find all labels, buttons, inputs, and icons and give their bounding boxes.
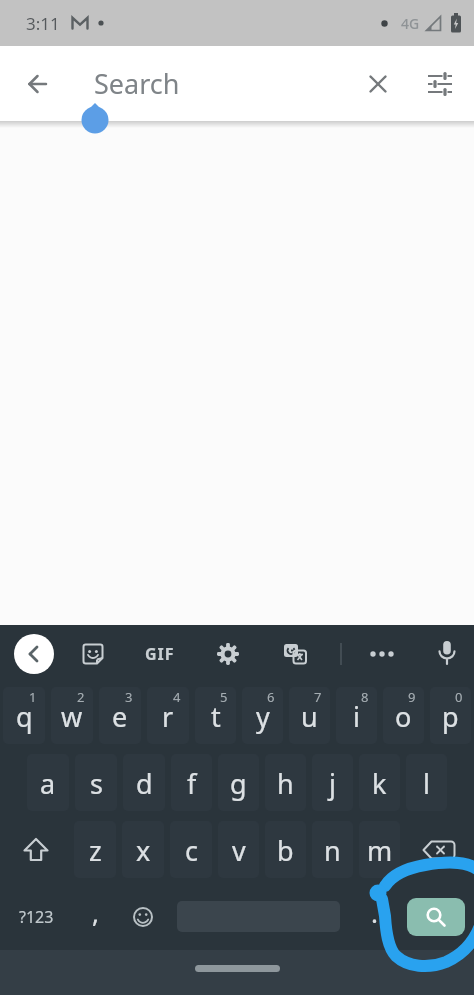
- button[interactable]: h: [262, 749, 309, 816]
- button[interactable]: r: [144, 682, 192, 749]
- button[interactable]: w: [48, 682, 96, 749]
- button[interactable]: [354, 60, 402, 108]
- button[interactable]: b: [262, 816, 309, 883]
- button[interactable]: [358, 625, 406, 682]
- staticText: e: [112, 698, 128, 735]
- staticText: GIF: [145, 643, 175, 665]
- button[interactable]: o: [380, 682, 427, 749]
- staticText: j: [329, 765, 336, 802]
- button[interactable]: [403, 816, 474, 883]
- button[interactable]: m: [356, 816, 403, 883]
- button[interactable]: q: [0, 682, 48, 749]
- staticText: 5: [220, 688, 228, 706]
- button[interactable]: j: [309, 749, 356, 816]
- staticText: a: [40, 765, 56, 802]
- staticText: 3: [125, 688, 133, 706]
- staticText: 4G: [401, 14, 420, 33]
- staticText: g: [230, 765, 247, 802]
- staticText: 0: [455, 688, 463, 706]
- button[interactable]: k: [356, 749, 403, 816]
- button[interactable]: [69, 625, 117, 682]
- staticText: 4: [173, 688, 181, 706]
- staticText: Search: [94, 65, 180, 102]
- button[interactable]: c: [167, 816, 215, 883]
- button[interactable]: [13, 60, 61, 108]
- staticText: x: [136, 832, 151, 869]
- button[interactable]: GIF: [136, 625, 184, 682]
- staticText: k: [372, 765, 387, 802]
- button[interactable]: ?123: [0, 883, 72, 950]
- button[interactable]: [204, 625, 252, 682]
- staticText: n: [324, 832, 341, 869]
- button[interactable]: d: [120, 749, 168, 816]
- staticText: 8: [361, 688, 369, 706]
- staticText: p: [442, 698, 459, 735]
- button[interactable]: [10, 625, 58, 682]
- button[interactable]: [416, 60, 464, 108]
- staticText: z: [89, 832, 102, 869]
- staticText: t: [211, 698, 221, 735]
- button[interactable]: ,: [72, 883, 119, 950]
- staticText: q: [16, 698, 33, 735]
- staticText: .: [371, 895, 378, 930]
- staticText: 6: [267, 688, 275, 706]
- button[interactable]: a: [24, 749, 72, 816]
- button[interactable]: f: [168, 749, 215, 816]
- button[interactable]: l: [403, 749, 450, 816]
- staticText: h: [277, 765, 294, 802]
- button[interactable]: [119, 883, 166, 950]
- staticText: y: [256, 698, 270, 735]
- staticText: f: [187, 765, 197, 802]
- button[interactable]: n: [309, 816, 356, 883]
- button[interactable]: [398, 883, 474, 950]
- staticText: o: [395, 698, 412, 735]
- staticText: 9: [408, 688, 416, 706]
- button[interactable]: [166, 883, 351, 950]
- button[interactable]: v: [215, 816, 262, 883]
- staticText: 3:11: [26, 12, 60, 35]
- button[interactable]: t: [192, 682, 239, 749]
- button[interactable]: y: [239, 682, 286, 749]
- button[interactable]: p: [427, 682, 474, 749]
- button[interactable]: e: [96, 682, 144, 749]
- staticText: c: [185, 832, 198, 869]
- button[interactable]: z: [71, 816, 119, 883]
- button[interactable]: Search: [94, 65, 180, 102]
- staticText: s: [90, 765, 103, 802]
- staticText: 2: [77, 688, 85, 706]
- staticText: ,: [92, 895, 99, 930]
- button[interactable]: i: [333, 682, 380, 749]
- staticText: d: [136, 765, 153, 802]
- staticText: 7: [314, 688, 322, 706]
- button[interactable]: [195, 965, 280, 972]
- button[interactable]: x: [119, 816, 167, 883]
- button[interactable]: g: [215, 749, 262, 816]
- button[interactable]: u: [286, 682, 333, 749]
- button[interactable]: [0, 816, 71, 883]
- button[interactable]: [423, 625, 471, 682]
- staticText: i: [353, 698, 360, 735]
- staticText: m: [367, 832, 393, 869]
- button[interactable]: s: [72, 749, 120, 816]
- staticText: ?123: [19, 906, 54, 928]
- staticText: l: [423, 765, 430, 802]
- staticText: v: [232, 832, 246, 869]
- button[interactable]: [271, 625, 319, 682]
- staticText: 1: [29, 688, 37, 706]
- button[interactable]: .: [351, 883, 398, 950]
- staticText: u: [301, 698, 318, 735]
- staticText: r: [162, 698, 174, 735]
- staticText: w: [61, 698, 83, 735]
- staticText: b: [277, 832, 294, 869]
